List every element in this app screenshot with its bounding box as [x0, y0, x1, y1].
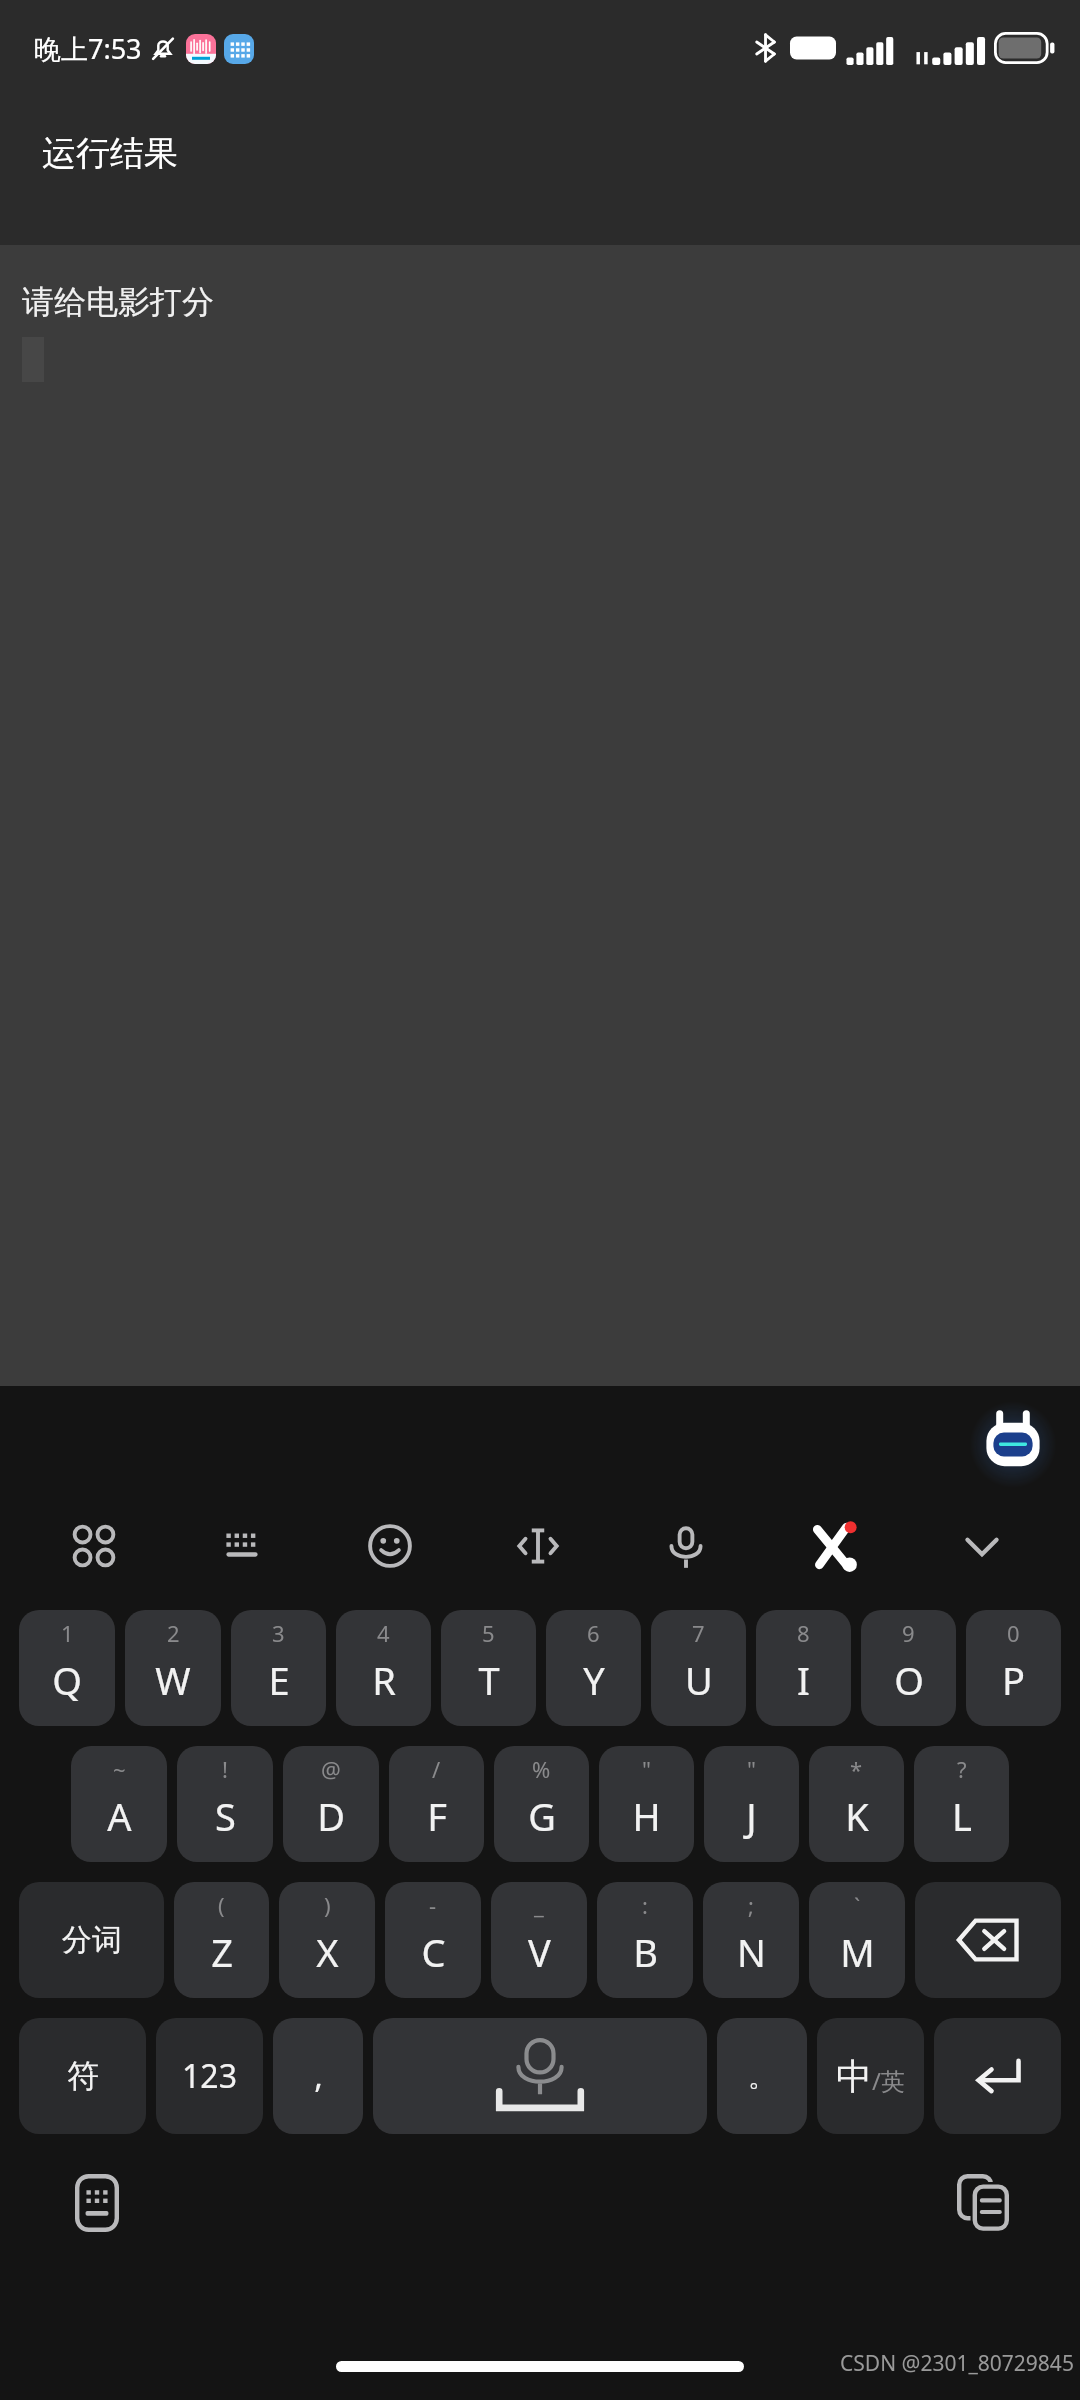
button[interactable]: Clipboard: [948, 2168, 1018, 2238]
staticText: Z: [211, 1926, 233, 1978]
staticText: ": [642, 1754, 651, 1784]
staticText: :: [642, 1890, 648, 1920]
button[interactable]: 3: [231, 1610, 326, 1726]
staticText: (: [218, 1890, 225, 1920]
staticText: 7: [692, 1618, 705, 1648]
staticText: 5: [482, 1618, 495, 1648]
button[interactable]: _: [491, 1882, 587, 1998]
staticText: 2: [167, 1618, 180, 1648]
staticText: U: [685, 1654, 713, 1706]
staticText: 0: [1007, 1618, 1020, 1648]
staticText: B: [633, 1926, 658, 1978]
staticText: *: [850, 1754, 863, 1784]
staticText: 。: [748, 2059, 776, 2094]
staticText: I: [797, 1654, 810, 1706]
button[interactable]: Backspace: [915, 1882, 1061, 1998]
button[interactable]: 7: [651, 1610, 746, 1726]
button[interactable]: :: [597, 1882, 693, 1998]
button[interactable]: *: [809, 1746, 904, 1862]
staticText: 8: [797, 1618, 810, 1648]
staticText: ?: [957, 1754, 967, 1784]
staticText: 请给电影打分: [22, 282, 214, 322]
button[interactable]: 分词: [19, 1882, 164, 1998]
staticText: K: [845, 1790, 869, 1842]
button[interactable]: ?: [914, 1746, 1009, 1862]
staticText: R: [372, 1654, 396, 1706]
button[interactable]: 。: [717, 2018, 807, 2134]
button[interactable]: ;: [703, 1882, 799, 1998]
staticText: H: [632, 1790, 661, 1842]
staticText: P: [1002, 1654, 1025, 1706]
staticText: C: [421, 1926, 446, 1978]
staticText: 1: [61, 1618, 74, 1648]
staticText: `: [854, 1890, 861, 1920]
staticText: ": [747, 1754, 756, 1784]
button[interactable]: /: [389, 1746, 484, 1862]
staticText: /英: [872, 2064, 905, 2097]
button[interactable]: Switch Chinese English: [817, 2018, 924, 2134]
staticText: Y: [583, 1654, 605, 1706]
staticText: L: [952, 1790, 972, 1842]
button[interactable]: Space: [373, 2018, 707, 2134]
button[interactable]: Voice input: [636, 1496, 736, 1596]
staticText: M: [840, 1926, 875, 1978]
button[interactable]: 2: [125, 1610, 221, 1726]
staticText: 符: [67, 2056, 99, 2096]
button[interactable]: 4: [336, 1610, 431, 1726]
staticText: 分词: [62, 1921, 122, 1959]
button[interactable]: `: [809, 1882, 905, 1998]
button[interactable]: %: [494, 1746, 589, 1862]
button[interactable]: 1: [19, 1610, 115, 1726]
staticText: F: [427, 1790, 447, 1842]
staticText: %: [532, 1754, 551, 1784]
staticText: T: [478, 1654, 500, 1706]
button[interactable]: !: [177, 1746, 273, 1862]
button[interactable]: Keyboard layout: [192, 1496, 292, 1596]
staticText: N: [737, 1926, 766, 1978]
staticText: !: [222, 1754, 228, 1784]
button[interactable]: 0: [966, 1610, 1061, 1726]
button[interactable]: Promotion: [784, 1496, 884, 1596]
staticText: Q: [52, 1654, 82, 1706]
staticText: G: [528, 1790, 556, 1842]
staticText: 4: [377, 1618, 390, 1648]
button[interactable]: Enter: [934, 2018, 1061, 2134]
staticText: 3: [272, 1618, 285, 1648]
staticText: S: [215, 1790, 236, 1842]
button[interactable]: Emoji: [340, 1496, 440, 1596]
button[interactable]: 123: [156, 2018, 263, 2134]
button[interactable]: 8: [756, 1610, 851, 1726]
staticText: X: [316, 1926, 339, 1978]
button[interactable]: ": [704, 1746, 799, 1862]
button[interactable]: Switch input method: [62, 2168, 132, 2238]
staticText: -: [429, 1890, 437, 1920]
staticText: ~: [113, 1754, 126, 1784]
staticText: V: [528, 1926, 551, 1978]
button[interactable]: Hide keyboard: [932, 1496, 1032, 1596]
button[interactable]: ~: [71, 1746, 167, 1862]
staticText: 9: [902, 1618, 915, 1648]
button[interactable]: -: [385, 1882, 481, 1998]
button[interactable]: ): [279, 1882, 375, 1998]
button[interactable]: 6: [546, 1610, 641, 1726]
staticText: J: [746, 1790, 757, 1842]
staticText: 晚上7:53: [34, 30, 142, 67]
button[interactable]: 符: [19, 2018, 146, 2134]
button[interactable]: ": [599, 1746, 694, 1862]
staticText: 123: [182, 2054, 237, 2098]
button[interactable]: 5: [441, 1610, 536, 1726]
button[interactable]: (: [174, 1882, 269, 1998]
button[interactable]: IME assistant: [978, 1406, 1048, 1476]
staticText: D: [317, 1790, 345, 1842]
staticText: CSDN @2301_80729845: [840, 2349, 1074, 2378]
button[interactable]: More functions: [44, 1496, 144, 1596]
button[interactable]: @: [283, 1746, 379, 1862]
staticText: 中: [836, 2054, 872, 2099]
button[interactable]: ,: [273, 2018, 363, 2134]
staticText: @: [321, 1754, 341, 1784]
staticText: ;: [748, 1890, 754, 1920]
staticText: W: [155, 1654, 191, 1706]
button[interactable]: Text cursor: [488, 1496, 588, 1596]
staticText: 运行结果: [42, 132, 178, 175]
button[interactable]: 9: [861, 1610, 956, 1726]
